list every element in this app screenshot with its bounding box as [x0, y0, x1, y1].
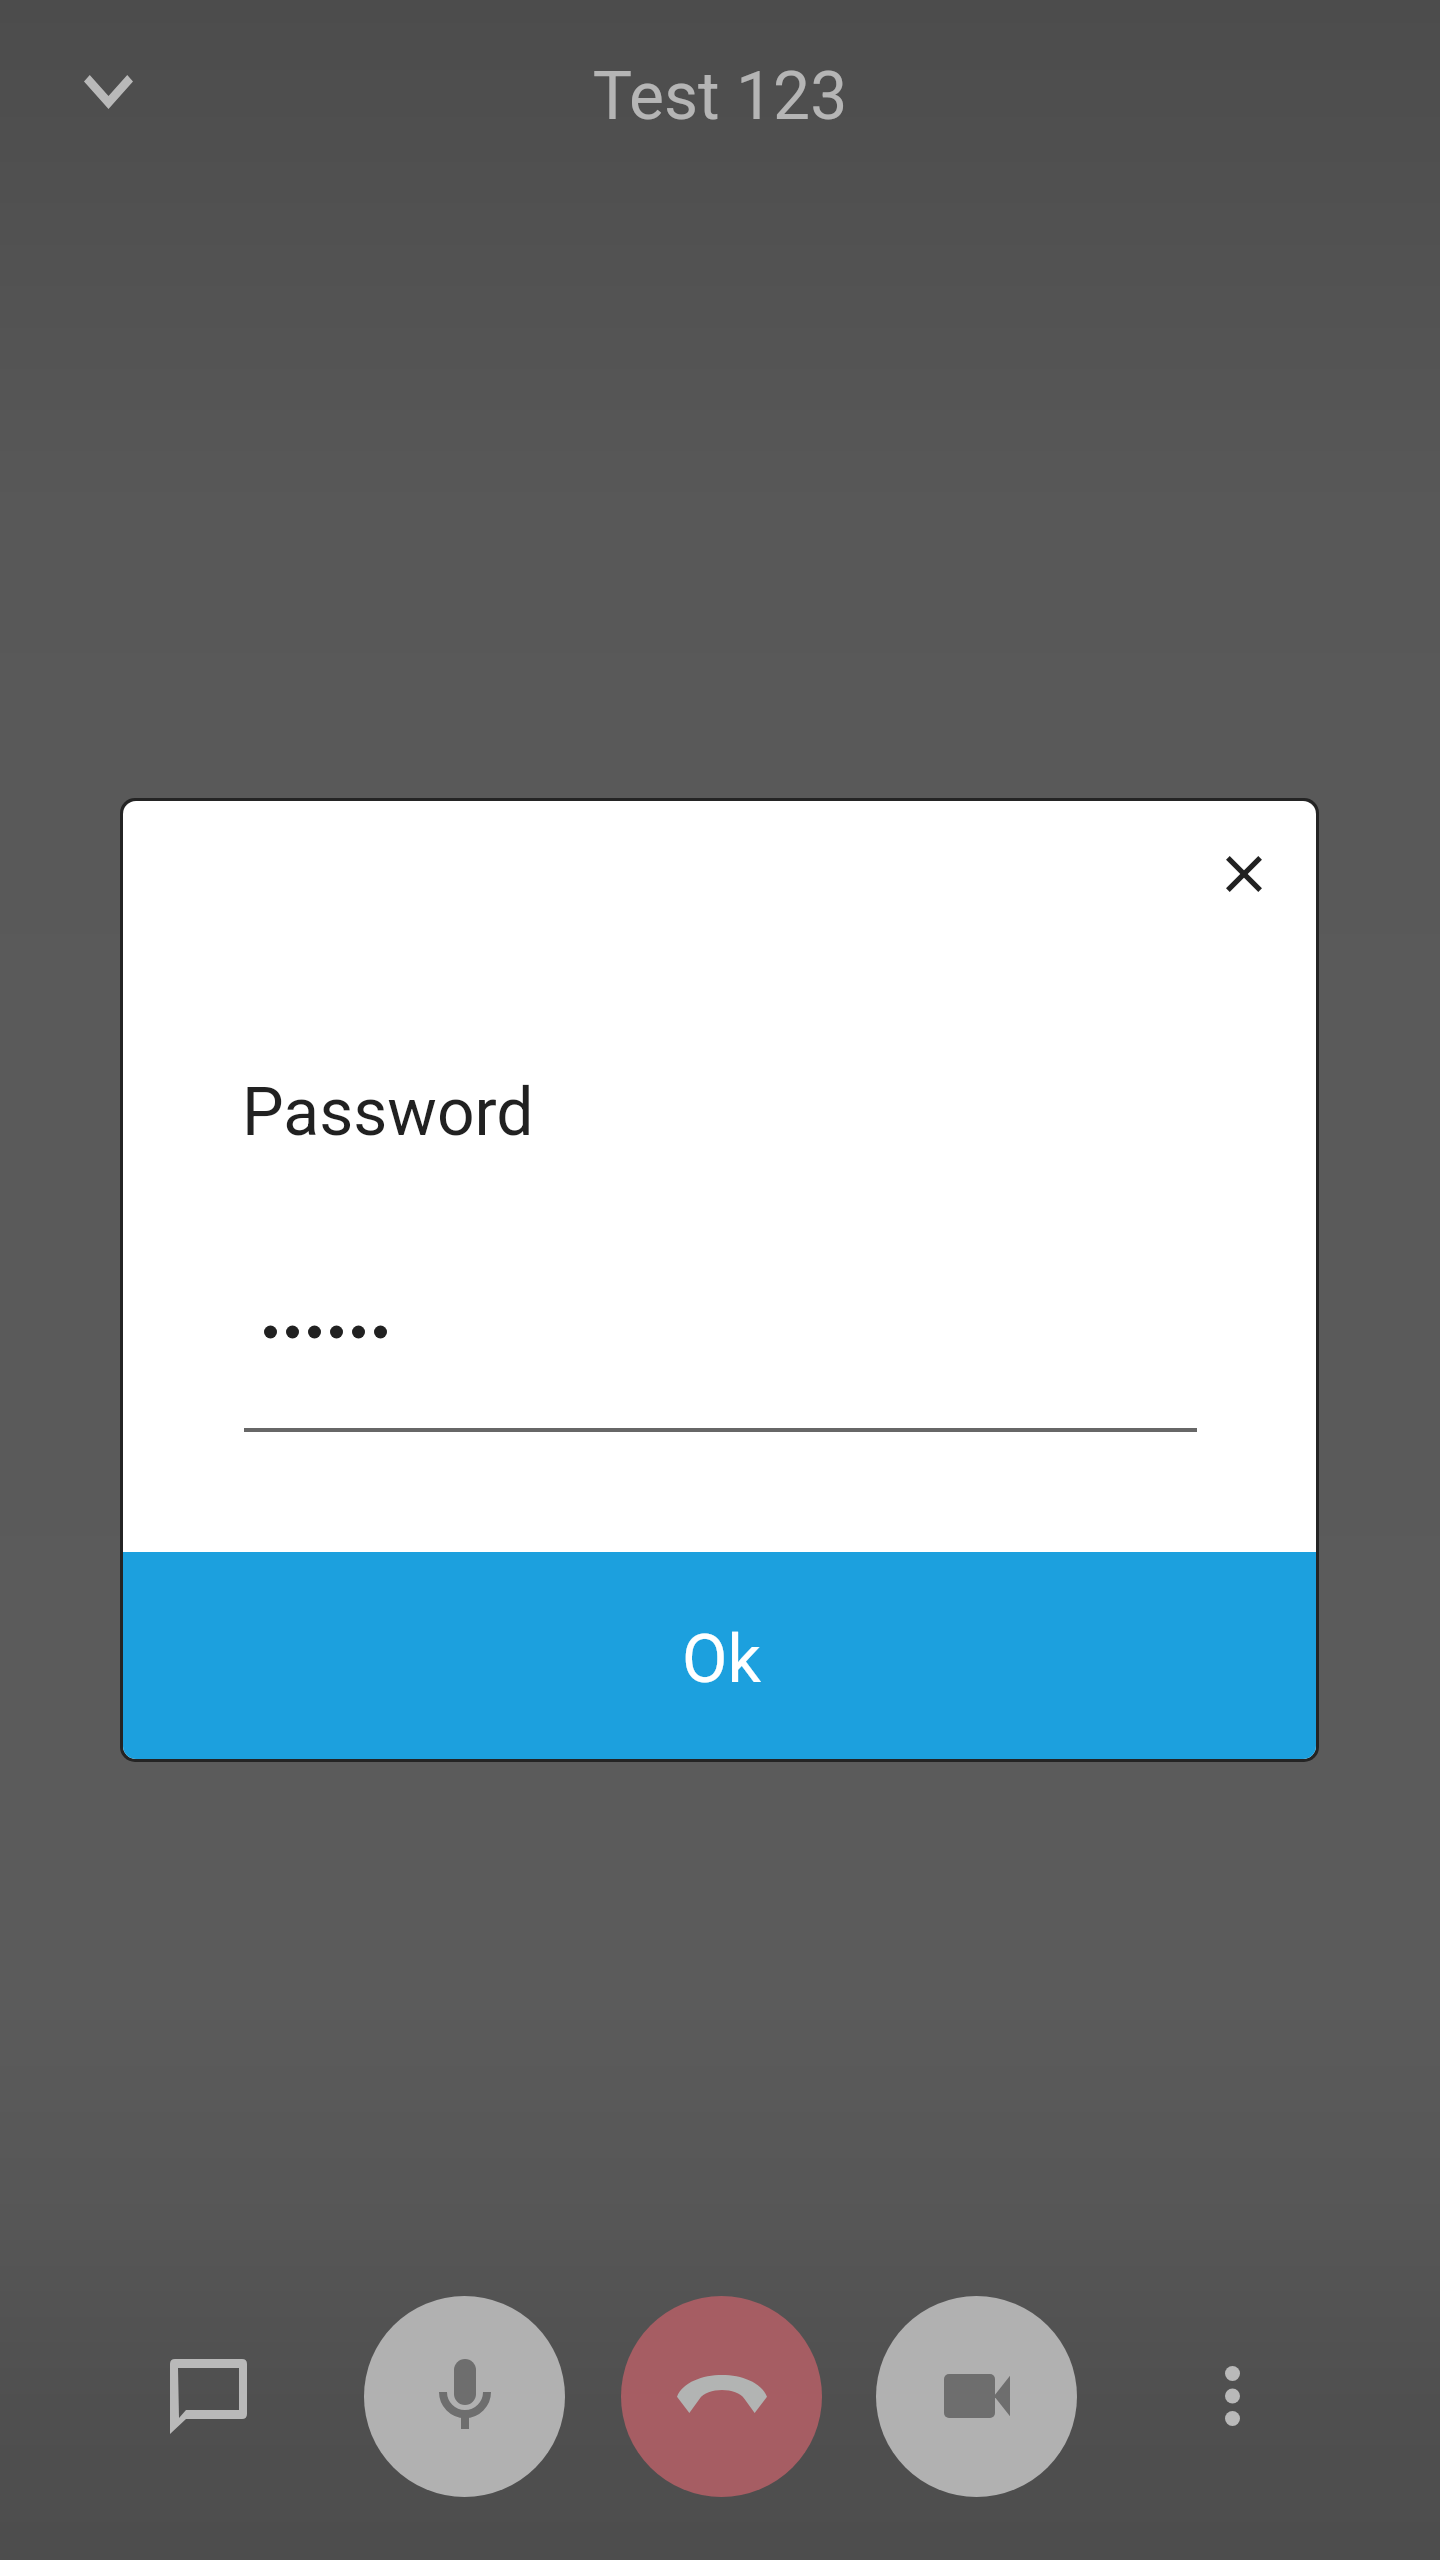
staticText: Password — [242, 1074, 534, 1151]
button[interactable]: Close — [1190, 820, 1298, 928]
button[interactable]: End call — [621, 2296, 822, 2497]
button[interactable]: Collapse — [20, 4, 196, 180]
button[interactable]: Chat — [153, 2341, 263, 2451]
button[interactable]: Mute microphone — [364, 2296, 565, 2497]
button[interactable]: Turn off camera — [876, 2296, 1077, 2497]
button[interactable]: More options — [1177, 2341, 1287, 2451]
staticText: Test 123 — [0, 58, 1440, 135]
staticText: Ok — [682, 1621, 761, 1698]
button[interactable]: Ok — [123, 1552, 1316, 1759]
